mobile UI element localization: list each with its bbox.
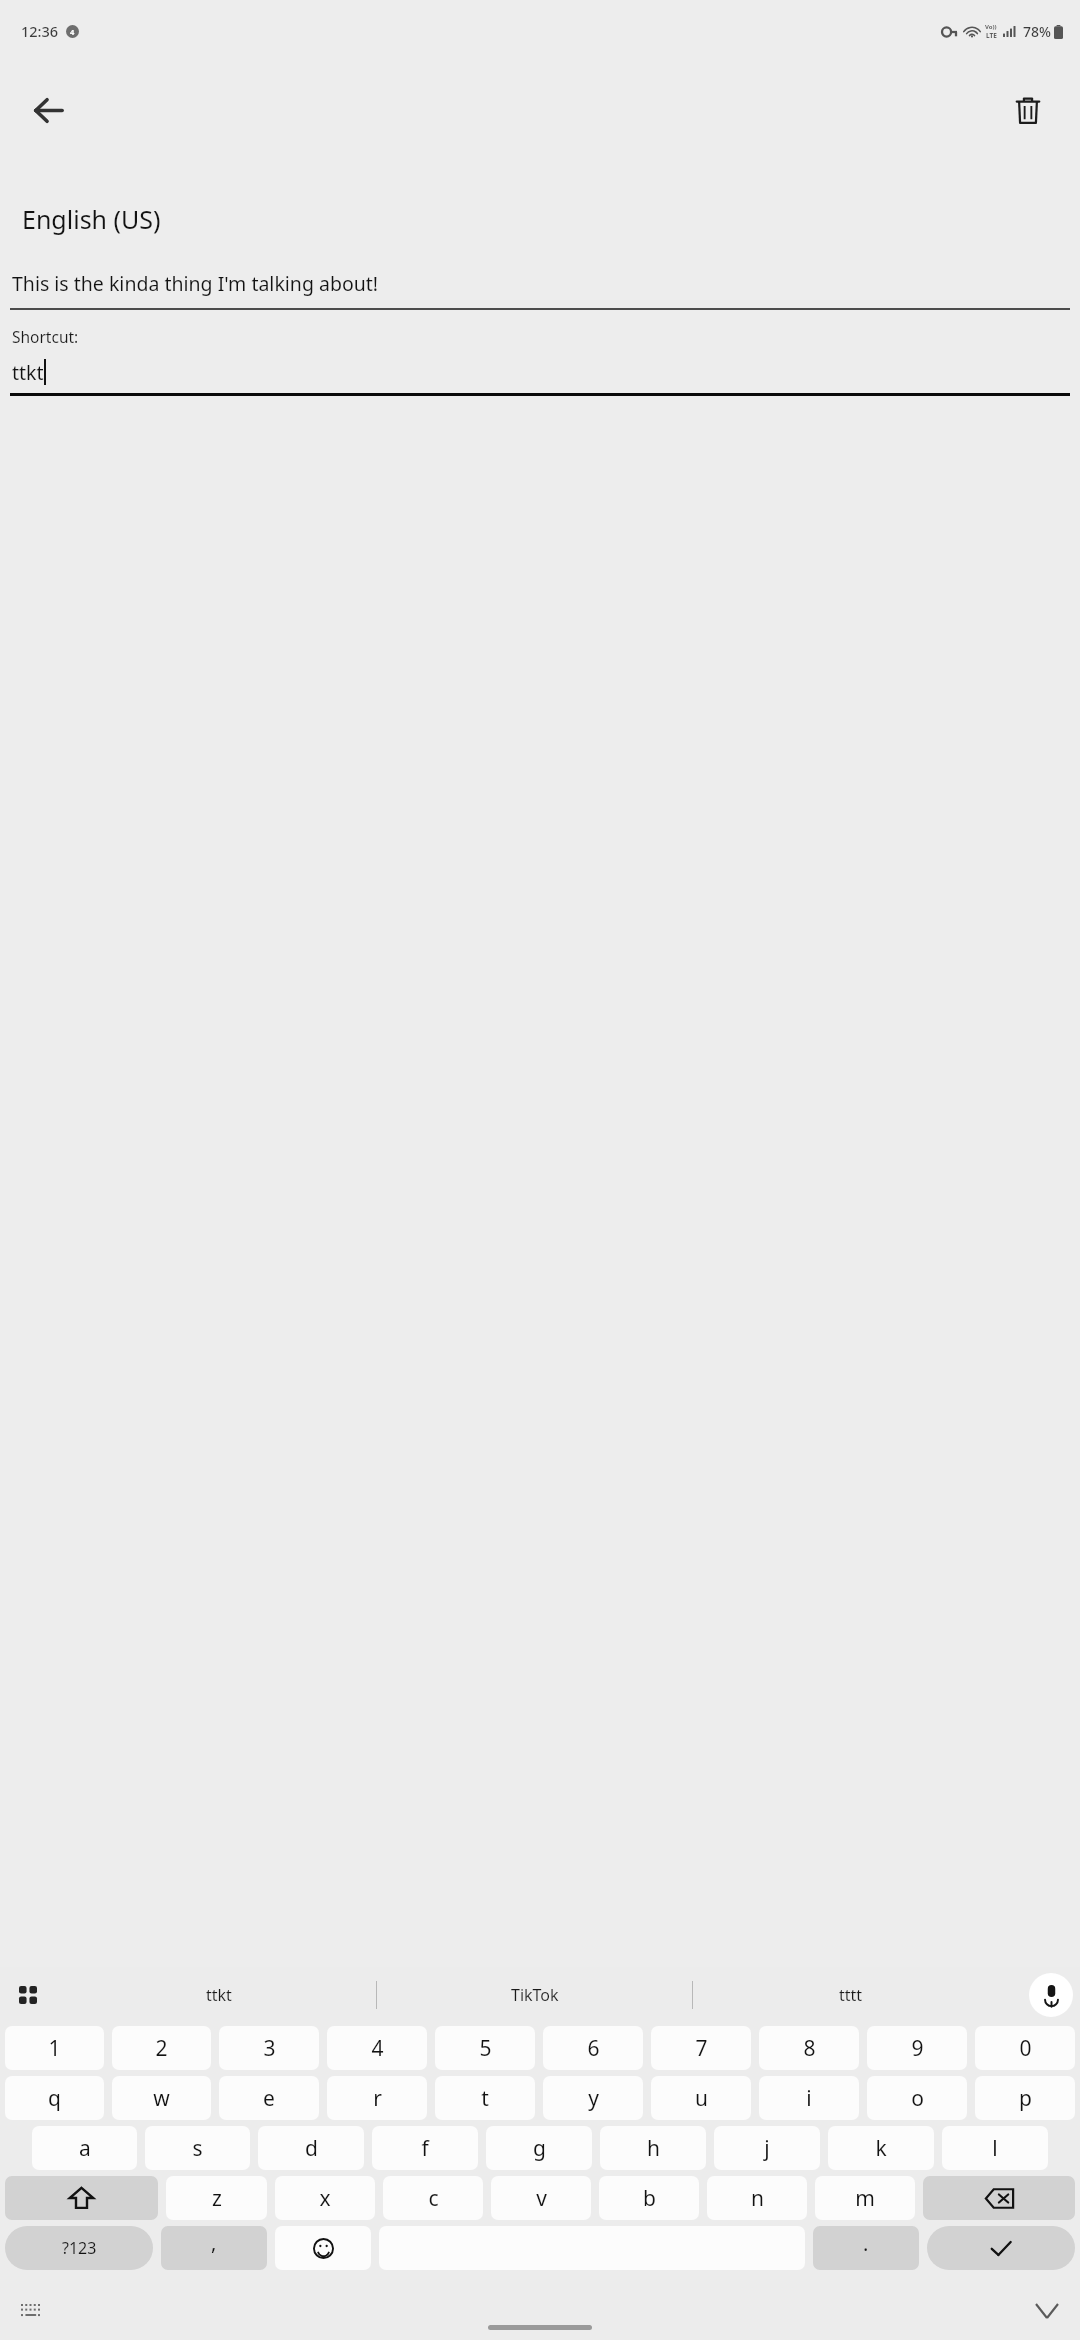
- button[interactable]: v: [491, 2176, 591, 2220]
- button[interactable]: j: [714, 2126, 820, 2170]
- button[interactable]: 0: [975, 2026, 1075, 2070]
- button[interactable]: Voice input: [1029, 1973, 1073, 2017]
- button[interactable]: 5: [435, 2026, 535, 2070]
- staticText: d: [305, 2134, 318, 2163]
- staticText: 78%: [1023, 22, 1051, 41]
- button[interactable]: ttkt: [62, 1967, 376, 2023]
- button[interactable]: ?123: [5, 2226, 153, 2270]
- button[interactable]: e: [219, 2076, 319, 2120]
- button[interactable]: Hide keyboard: [1024, 2288, 1070, 2334]
- staticText: LTE: [986, 31, 997, 40]
- button[interactable]: Back: [10, 72, 86, 148]
- staticText: j: [764, 2134, 770, 2163]
- staticText: z: [212, 2184, 222, 2213]
- staticText: u: [695, 2084, 708, 2113]
- button[interactable]: h: [600, 2126, 706, 2170]
- staticText: 12:36: [21, 21, 59, 41]
- staticText: t: [481, 2084, 489, 2113]
- staticText: tttt: [839, 1984, 863, 2006]
- staticText: 2: [155, 2034, 168, 2063]
- button[interactable]: s: [145, 2126, 250, 2170]
- button[interactable]: Emoji: [275, 2226, 371, 2270]
- button[interactable]: a: [32, 2126, 137, 2170]
- staticText: o: [911, 2084, 924, 2113]
- button[interactable]: i: [759, 2076, 859, 2120]
- staticText: 0: [1019, 2034, 1032, 2063]
- staticText: p: [1019, 2084, 1032, 2113]
- button[interactable]: 1: [5, 2026, 104, 2070]
- staticText: r: [373, 2084, 382, 2113]
- button[interactable]: Change keyboard: [8, 2289, 52, 2333]
- staticText: k: [875, 2134, 887, 2163]
- button[interactable]: 3: [219, 2026, 319, 2070]
- staticText: v: [536, 2184, 547, 2213]
- staticText: m: [855, 2184, 875, 2213]
- staticText: 1: [48, 2034, 61, 2063]
- staticText: This is the kinda thing I'm talking abou…: [12, 270, 379, 297]
- button[interactable]: This is the kinda thing I'm talking abou…: [10, 270, 1070, 310]
- button[interactable]: q: [5, 2076, 104, 2120]
- staticText: TikTok: [511, 1984, 559, 2006]
- button[interactable]: tttt: [693, 1967, 1008, 2023]
- button[interactable]: p: [975, 2076, 1075, 2120]
- button[interactable]: 8: [759, 2026, 859, 2070]
- button[interactable]: ttkt: [10, 359, 1070, 396]
- staticText: 9: [911, 2034, 924, 2063]
- staticText: h: [647, 2134, 660, 2163]
- button[interactable]: .: [813, 2226, 919, 2270]
- button[interactable]: g: [486, 2126, 592, 2170]
- button[interactable]: 7: [651, 2026, 751, 2070]
- button[interactable]: Shift: [5, 2176, 158, 2220]
- button[interactable]: n: [707, 2176, 807, 2220]
- staticText: 4: [371, 2034, 384, 2063]
- staticText: Shortcut:: [12, 326, 79, 347]
- button[interactable]: y: [543, 2076, 643, 2120]
- button[interactable]: u: [651, 2076, 751, 2120]
- button[interactable]: 4: [327, 2026, 427, 2070]
- staticText: y: [588, 2084, 599, 2113]
- button[interactable]: TikTok: [377, 1967, 692, 2023]
- staticText: n: [751, 2184, 764, 2213]
- staticText: l: [992, 2134, 998, 2163]
- button[interactable]: Done: [927, 2226, 1075, 2270]
- staticText: Vo)): [985, 23, 997, 31]
- button[interactable]: 2: [112, 2026, 211, 2070]
- button[interactable]: d: [258, 2126, 364, 2170]
- staticText: f: [421, 2134, 429, 2163]
- staticText: English (US): [22, 202, 161, 236]
- button[interactable]: x: [275, 2176, 375, 2220]
- button[interactable]: 6: [543, 2026, 643, 2070]
- staticText: a: [79, 2134, 91, 2163]
- staticText: ?123: [62, 2237, 97, 2259]
- staticText: x: [319, 2184, 331, 2213]
- button[interactable]: k: [828, 2126, 934, 2170]
- staticText: b: [643, 2184, 656, 2213]
- button[interactable]: Keyboard toolbar: [5, 1972, 51, 2018]
- button[interactable]: 9: [867, 2026, 967, 2070]
- staticText: 7: [695, 2034, 708, 2063]
- button[interactable]: l: [942, 2126, 1048, 2170]
- button[interactable]: o: [867, 2076, 967, 2120]
- button[interactable]: m: [815, 2176, 915, 2220]
- staticText: q: [48, 2084, 61, 2113]
- button[interactable]: c: [383, 2176, 483, 2220]
- staticText: .: [863, 2230, 869, 2257]
- staticText: i: [806, 2084, 812, 2113]
- staticText: 6: [587, 2034, 600, 2063]
- staticText: ttkt: [206, 1984, 232, 2006]
- staticText: 3: [263, 2034, 276, 2063]
- button[interactable]: w: [112, 2076, 211, 2120]
- button[interactable]: Delete: [990, 72, 1066, 148]
- button[interactable]: Backspace: [923, 2176, 1075, 2220]
- button[interactable]: f: [372, 2126, 478, 2170]
- staticText: g: [533, 2134, 546, 2163]
- staticText: ,: [211, 2229, 217, 2256]
- button[interactable]: r: [327, 2076, 427, 2120]
- staticText: w: [153, 2084, 170, 2113]
- button[interactable]: z: [166, 2176, 267, 2220]
- button[interactable]: t: [435, 2076, 535, 2120]
- button[interactable]: b: [599, 2176, 699, 2220]
- button[interactable]: ,: [161, 2226, 267, 2270]
- staticText: 8: [803, 2034, 816, 2063]
